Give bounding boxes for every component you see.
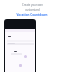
- staticText: Create your own: [22, 3, 43, 7]
- staticText: customized: [25, 8, 40, 12]
- staticText: Vacation Countdown: [16, 13, 48, 17]
